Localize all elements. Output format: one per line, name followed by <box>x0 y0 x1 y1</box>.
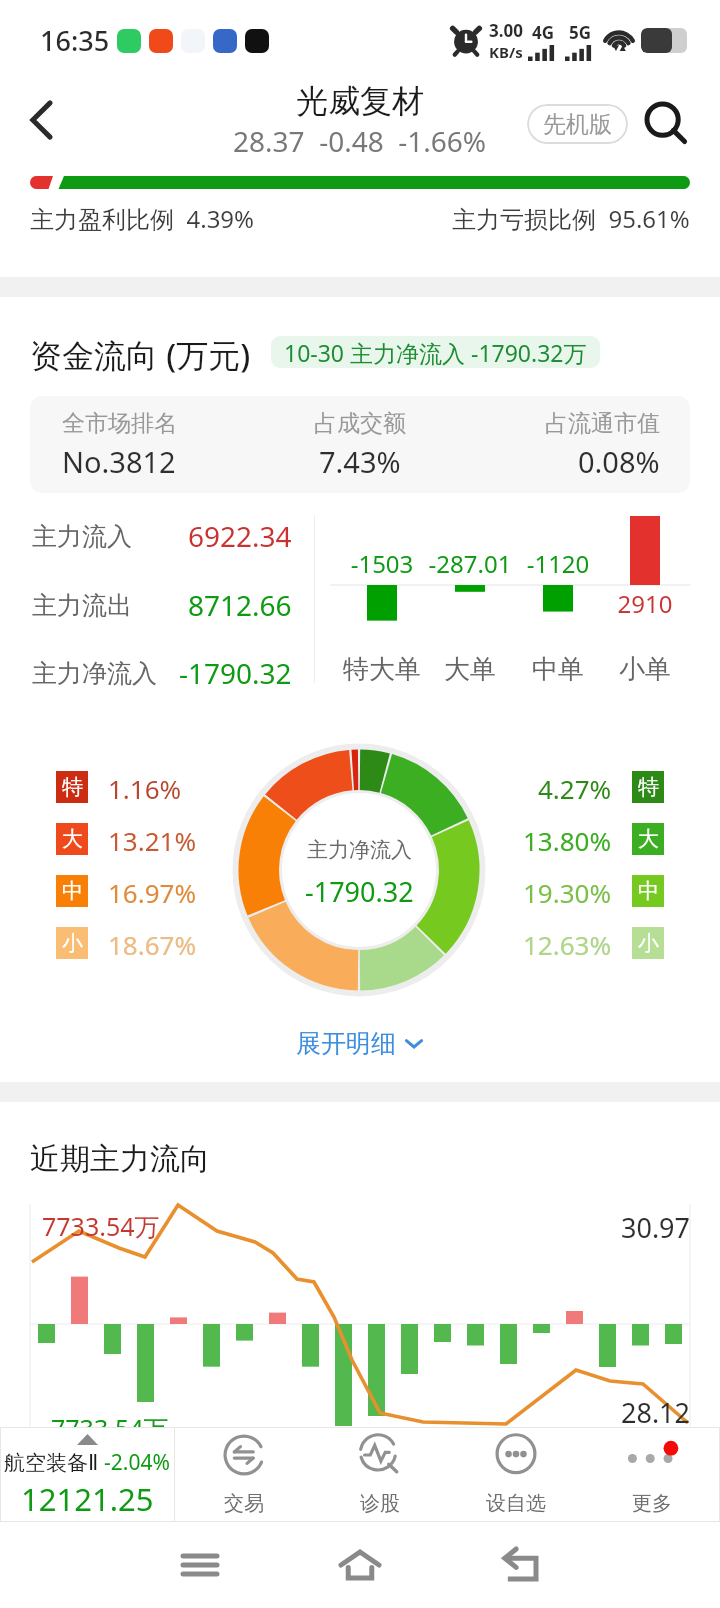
button[interactable]: 诊股 <box>312 1427 448 1522</box>
staticText: 资金流向 (万元) <box>30 333 251 377</box>
staticText: 大 <box>638 826 659 852</box>
staticText: 12.63% <box>523 927 612 959</box>
staticText: 中 <box>62 878 83 904</box>
staticText: 近期主力流向 <box>30 1140 210 1178</box>
staticText: 大单 <box>410 653 530 686</box>
button[interactable]: 更多 <box>584 1427 720 1522</box>
staticText: 16:35 <box>40 22 110 59</box>
staticText: 航空装备Ⅱ <box>4 1450 99 1476</box>
staticText: 全市场排名 <box>62 409 177 438</box>
staticText: 诊股 <box>360 1491 400 1516</box>
staticText: 30.97 <box>550 1209 690 1246</box>
staticText: 展开明细 <box>296 1028 396 1059</box>
staticText: 13.21% <box>108 823 197 855</box>
staticText: -2.04% <box>104 1448 170 1477</box>
button[interactable]: Back <box>9 89 71 151</box>
button[interactable]: Search <box>638 95 696 153</box>
staticText: 主力亏损比例 95.61% <box>452 202 690 235</box>
staticText: 占成交额 <box>314 409 406 438</box>
button[interactable]: 展开明细 <box>0 1019 720 1067</box>
staticText: -287.01 <box>410 547 530 580</box>
staticText: 10-30 主力净流入 -1790.32万 <box>284 337 587 368</box>
staticText: 28.37 -0.48 -1.66% <box>233 122 487 160</box>
staticText: 主力盈利比例 4.39% <box>30 202 255 235</box>
staticText: 更多 <box>632 1491 672 1516</box>
staticText: 16.97% <box>108 875 197 907</box>
staticText: 7733.54万 <box>42 1209 160 1243</box>
staticText: 1.16% <box>108 771 182 803</box>
staticText: 特 <box>62 774 83 800</box>
staticText: 2910 <box>585 587 705 620</box>
button[interactable]: Recents <box>165 1530 235 1600</box>
staticText: 先机版 <box>543 110 612 139</box>
staticText: -1790.32 <box>305 873 414 910</box>
staticText: 主力流入 <box>32 521 132 552</box>
staticText: -1790.32 <box>179 654 292 692</box>
staticText: KB/s <box>489 42 523 62</box>
staticText: 小 <box>638 930 659 956</box>
staticText: 光威复材 <box>296 81 424 121</box>
button[interactable]: 航空装备Ⅱ <box>0 1427 174 1522</box>
staticText: 13.80% <box>523 823 612 855</box>
staticText: 占流通市值 <box>545 409 660 438</box>
staticText: 主力流出 <box>32 590 132 621</box>
staticText: No.3812 <box>62 442 176 481</box>
staticText: 7733.54万 <box>51 1411 169 1445</box>
staticText: 小 <box>62 930 83 956</box>
staticText: 主力净流入 <box>32 658 157 689</box>
staticText: 3.00 <box>489 19 523 42</box>
staticText: 12121.25 <box>21 1478 154 1520</box>
staticText: 交易 <box>224 1491 264 1516</box>
staticText: 大 <box>62 826 83 852</box>
staticText: 特大单 <box>322 653 442 686</box>
button[interactable]: Back <box>485 1530 555 1600</box>
staticText: -1120 <box>498 547 618 580</box>
staticText: 18.67% <box>108 927 197 959</box>
staticText: 6922.34 <box>188 517 292 555</box>
button[interactable]: 设自选 <box>448 1427 584 1522</box>
staticText: 设自选 <box>486 1491 546 1516</box>
staticText: 5G <box>569 21 592 44</box>
button[interactable]: 10-30 主力净流入 -1790.32万 <box>271 336 600 368</box>
staticText: 中 <box>638 878 659 904</box>
staticText: 4G <box>532 21 555 44</box>
button[interactable]: 交易 <box>175 1427 312 1522</box>
staticText: 4.27% <box>538 771 612 803</box>
staticText: 特 <box>638 774 659 800</box>
staticText: 主力净流入 <box>307 837 412 863</box>
staticText: 8712.66 <box>188 586 292 624</box>
staticText: 小单 <box>585 653 705 686</box>
button[interactable]: 先机版 <box>527 104 628 144</box>
staticText: 0.08% <box>578 442 660 481</box>
staticText: -1503 <box>322 547 442 580</box>
staticText: 中单 <box>498 653 618 686</box>
button[interactable]: Home <box>325 1530 395 1600</box>
staticText: 28.12 <box>550 1394 690 1431</box>
staticText: 19.30% <box>523 875 612 907</box>
staticText: 7.43% <box>319 442 401 481</box>
